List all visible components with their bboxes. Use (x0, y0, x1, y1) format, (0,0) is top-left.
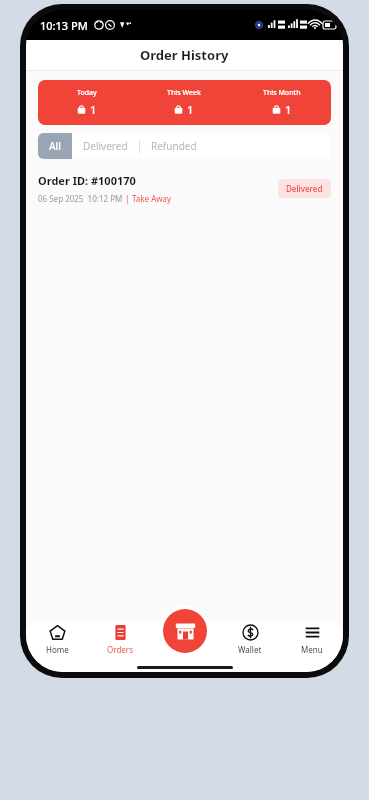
staticText: 1 (90, 102, 97, 117)
button[interactable]: Wallet (219, 624, 281, 672)
staticText: 1 (285, 102, 292, 117)
staticText: Menu (301, 644, 323, 655)
staticText: 10:13 PM (40, 18, 88, 33)
staticText: All (49, 139, 61, 153)
button[interactable]: Store (163, 609, 207, 653)
staticText: Take Away (132, 193, 172, 204)
button[interactable]: Home (26, 624, 89, 672)
staticText: Delivered (286, 183, 323, 194)
button[interactable]: Refunded (140, 133, 208, 159)
staticText: Wallet (238, 644, 262, 655)
staticText: | (125, 193, 132, 204)
button[interactable]: This Week (135, 80, 233, 125)
button[interactable]: All (38, 133, 72, 159)
staticText: Order ID: #100170 (38, 173, 136, 188)
staticText: Home (46, 644, 69, 655)
staticText: Today (77, 88, 97, 98)
button[interactable]: Today (38, 80, 135, 125)
staticText: Refunded (151, 139, 197, 153)
staticText: Order History (140, 46, 229, 64)
button[interactable]: Orders (89, 624, 151, 672)
staticText: This Week (167, 88, 201, 98)
button[interactable]: Delivered (72, 133, 139, 159)
button[interactable]: This Month (233, 80, 331, 125)
staticText: 1 (187, 102, 194, 117)
staticText: 06 Sep 2025 10:12 PM (38, 193, 125, 204)
staticText: Delivered (83, 139, 128, 153)
button[interactable]: Menu (281, 624, 343, 672)
button[interactable]: Order ID: #100170 (26, 169, 343, 208)
staticText: This Month (263, 88, 301, 98)
staticText: Orders (107, 644, 133, 655)
